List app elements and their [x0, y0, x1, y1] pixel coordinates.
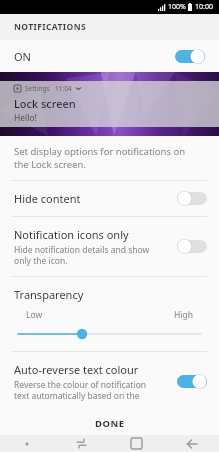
staticText: Settings [25, 84, 50, 93]
staticText: Hide content [14, 191, 81, 206]
button[interactable]: Hide content [0, 181, 219, 216]
button[interactable]: Home [109, 435, 164, 452]
staticText: DONE [95, 417, 125, 430]
button[interactable]: Off [177, 239, 207, 254]
staticText: Transparency [14, 287, 84, 302]
staticText: Auto-reverse text colour [14, 362, 139, 377]
button[interactable]: Recents [54, 435, 109, 452]
button[interactable]: ON [0, 40, 219, 72]
button[interactable]: Off [177, 191, 207, 206]
staticText: Hello! [14, 112, 37, 124]
button[interactable]: On [175, 49, 205, 64]
staticText: High [174, 309, 193, 321]
staticText: Set display options for notifications on… [14, 145, 186, 171]
staticText: 100% [168, 2, 186, 12]
button[interactable]: Notification icons only [0, 217, 219, 276]
button[interactable]: Transparency slider [0, 327, 219, 341]
button[interactable]: Menu indicator [0, 435, 54, 452]
button[interactable]: Back [164, 435, 219, 452]
button[interactable]: On [177, 374, 207, 389]
staticText: Lock screen [14, 96, 76, 111]
staticText: Hide notification details and show only … [14, 244, 150, 266]
button[interactable]: DONE [0, 411, 219, 435]
staticText: 10:00 [195, 2, 213, 12]
staticText: NOTIFICATIONS [14, 21, 87, 33]
staticText: 11:04 [55, 84, 72, 93]
button[interactable]: Auto-reverse text colour [0, 352, 219, 411]
staticText: Reverse the colour of notification text … [14, 379, 147, 401]
staticText: Notification icons only [14, 227, 129, 242]
staticText: Low [26, 309, 43, 321]
staticText: ON [14, 49, 31, 64]
